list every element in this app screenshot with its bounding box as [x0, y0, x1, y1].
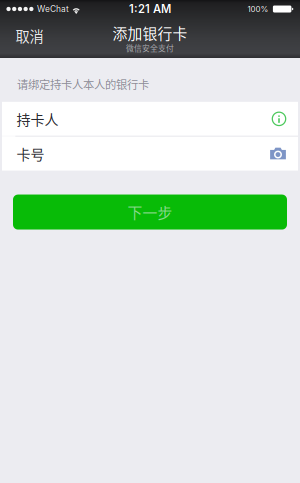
- staticText: 1:21 AM: [129, 2, 171, 16]
- staticText: 下一步: [127, 201, 172, 223]
- staticText: 100%: [247, 4, 268, 14]
- staticText: 持卡人: [16, 109, 58, 129]
- staticText: 添加银行卡: [112, 22, 187, 43]
- staticText: 卡号: [16, 143, 44, 164]
- button[interactable]: 持卡人: [2, 102, 298, 136]
- staticText: 请绑定持卡人本人的银行卡: [17, 76, 149, 92]
- staticText: 微信安全支付: [126, 42, 174, 54]
- button[interactable]: 取消: [0, 18, 57, 58]
- staticText: WeChat: [37, 4, 69, 14]
- button[interactable]: 卡号: [2, 137, 298, 171]
- staticText: 取消: [15, 25, 43, 46]
- button[interactable]: 下一步: [13, 195, 287, 230]
